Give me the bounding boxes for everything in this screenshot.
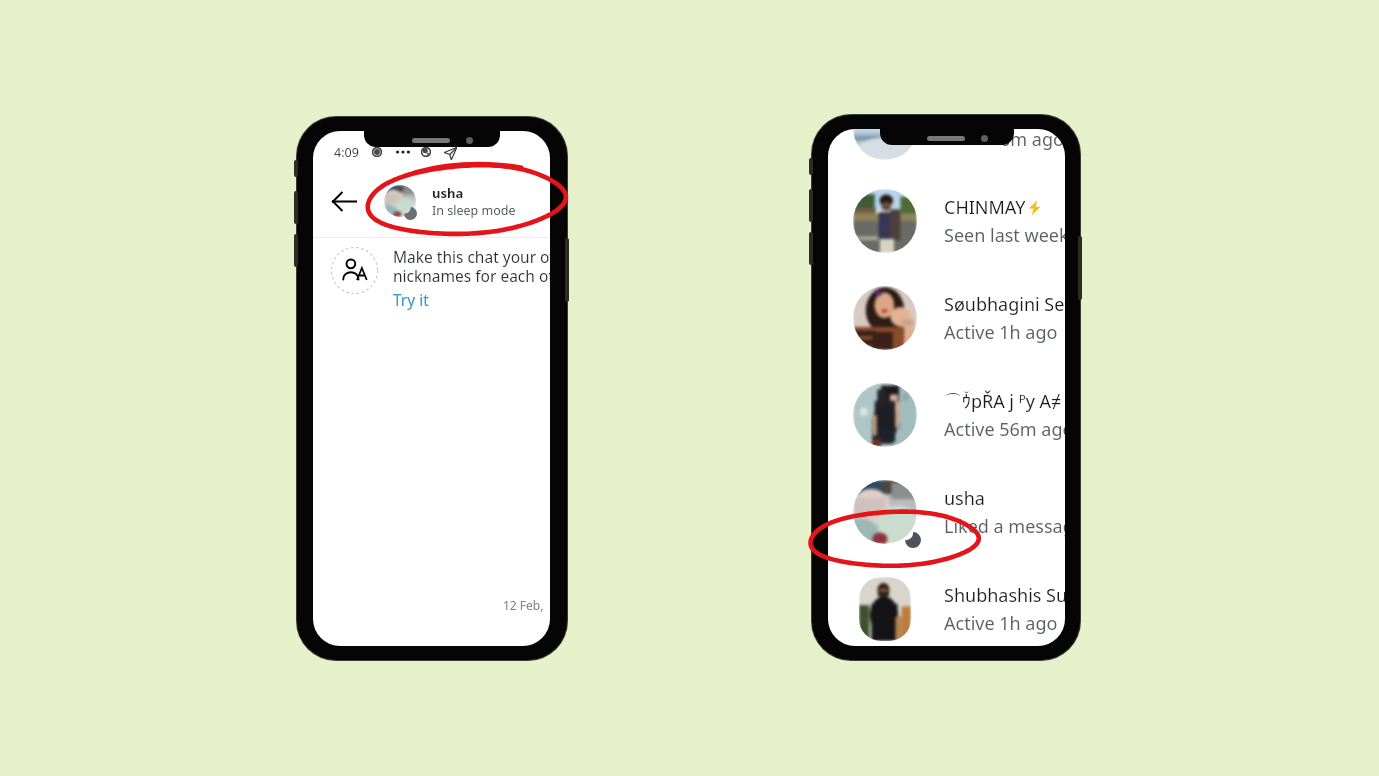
button[interactable]: Back: [330, 187, 358, 215]
staticText: Liked a message: [944, 514, 1065, 539]
staticText: Seen last week: [944, 223, 1065, 248]
staticText: Active 56m ago: [944, 417, 1065, 442]
staticText: usha: [944, 486, 985, 511]
button[interactable]: Shubhashis Suv: [828, 560, 1065, 646]
staticText: In sleep mode: [432, 202, 516, 219]
staticText: Active 1h ago: [944, 320, 1058, 345]
staticText: Make this chat your own. Set: [393, 246, 550, 267]
staticText: Shubhashis Suv: [944, 583, 1065, 608]
button[interactable]: Back: [313, 179, 550, 237]
staticText: nicknames for each other.: [393, 265, 550, 286]
staticText: ⌒ｳ̌рŘA j ᴾy A≠: [944, 389, 1062, 414]
staticText: usha: [432, 184, 464, 202]
button[interactable]: CHINMAY: [828, 172, 1065, 269]
button[interactable]: Søubhagini Seth: [828, 269, 1065, 366]
button[interactable]: ⌒ｳ̌рŘA j ᴾy A≠: [828, 366, 1065, 463]
button[interactable]: usha: [828, 463, 1065, 560]
staticText: 4:09: [334, 144, 359, 161]
staticText: 12 Feb,: [503, 597, 544, 613]
staticText: CHINMAY: [944, 195, 1026, 220]
staticText: Active 1h ago: [944, 611, 1058, 636]
staticText: Søubhagini Seth: [944, 292, 1065, 317]
button[interactable]: Make this chat your own. Set: [313, 243, 550, 323]
button[interactable]: Try it: [393, 289, 429, 310]
staticText: 6m ago: [1000, 129, 1064, 152]
